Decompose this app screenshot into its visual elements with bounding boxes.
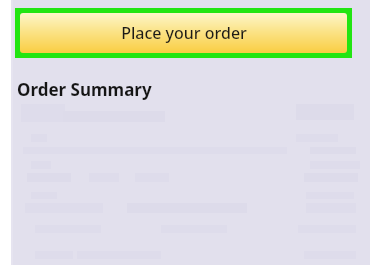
staticText: Order Summary — [17, 78, 152, 101]
button[interactable]: Place your order — [20, 13, 347, 53]
button[interactable]: Order Summary — [17, 76, 152, 103]
staticText: Place your order — [121, 22, 247, 44]
